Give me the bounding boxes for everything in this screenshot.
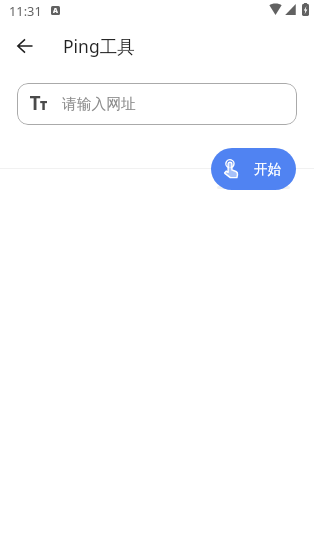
- button[interactable]: 请输入网址: [17, 83, 297, 125]
- staticText: A: [53, 6, 58, 15]
- staticText: 请输入网址: [62, 95, 136, 114]
- staticText: 11:31: [9, 2, 42, 19]
- button[interactable]: 开始: [211, 148, 296, 190]
- staticText: Ping工具: [63, 34, 135, 58]
- button[interactable]: Back: [9, 30, 41, 62]
- staticText: 开始: [254, 161, 282, 178]
